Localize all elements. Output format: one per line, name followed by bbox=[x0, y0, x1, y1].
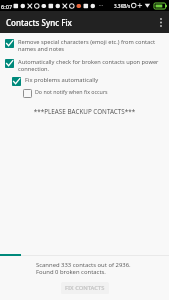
staticText: ***PLEASE BACKUP CONTACTS*** bbox=[0, 107, 169, 116]
button[interactable]: More options bbox=[153, 14, 169, 30]
staticText: Scanned 333 contacts out of 2936. bbox=[36, 261, 131, 269]
staticText: Contacts Sync Fix bbox=[6, 17, 72, 28]
button[interactable]: Remove special characters (emoji etc.) f… bbox=[0, 35, 169, 52]
button[interactable]: Fix problems automatically bbox=[0, 73, 169, 90]
button[interactable]: Do not notify when fix occurs bbox=[0, 85, 169, 102]
staticText: Do not notify when fix occurs bbox=[35, 88, 162, 95]
staticText: Fix problems automatically bbox=[25, 76, 162, 84]
staticText: Remove special characters (emoji etc.) f… bbox=[18, 38, 162, 53]
button[interactable]: FIX CONTACTS bbox=[61, 282, 109, 294]
staticText: FIX CONTACTS bbox=[65, 284, 105, 292]
staticText: ... bbox=[99, 1, 104, 8]
staticText: Automatically check for broken contacts … bbox=[18, 58, 162, 73]
staticText: Found 0 broken contacts. bbox=[36, 268, 106, 276]
staticText: 6:07 bbox=[1, 3, 13, 11]
button[interactable]: Automatically check for broken contacts … bbox=[0, 55, 169, 72]
staticText: 3.3KB/s bbox=[114, 3, 131, 9]
